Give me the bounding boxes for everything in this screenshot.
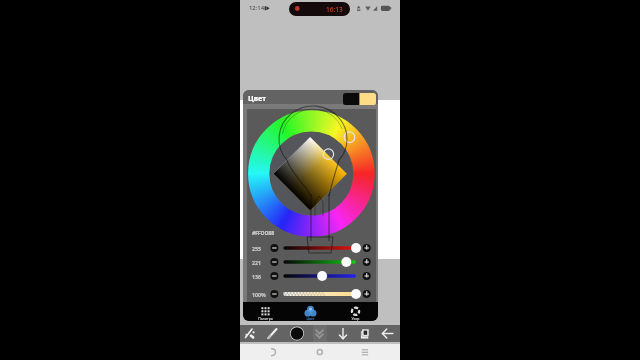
button[interactable]: Recents bbox=[361, 344, 377, 360]
staticText: 12:14 bbox=[249, 4, 265, 12]
button[interactable]: Undo bbox=[377, 325, 399, 342]
button[interactable]: Brush bbox=[262, 325, 284, 342]
staticText: Цвет bbox=[248, 93, 266, 103]
staticText: Узор bbox=[351, 316, 360, 321]
button[interactable]: Recording timer bbox=[289, 2, 350, 16]
staticText: 221 bbox=[252, 259, 261, 266]
button[interactable]: Colour bbox=[286, 325, 308, 342]
staticText: Цвет bbox=[306, 316, 315, 321]
staticText: 136 bbox=[252, 273, 261, 280]
button[interactable]: Current and new colour bbox=[343, 93, 376, 105]
button[interactable]: Цвет bbox=[288, 302, 333, 321]
button[interactable]: Узор bbox=[333, 302, 378, 321]
button[interactable]: Import bbox=[332, 325, 354, 342]
staticText: #FFDD88 bbox=[252, 229, 275, 236]
staticText: 100% bbox=[252, 291, 266, 298]
button[interactable]: Layers bbox=[355, 325, 377, 342]
button[interactable]: Back bbox=[273, 344, 289, 360]
staticText: 255 bbox=[252, 245, 261, 252]
button[interactable]: Home bbox=[316, 344, 332, 360]
staticText: 16:13 bbox=[326, 5, 343, 14]
button[interactable]: Палитра bbox=[243, 302, 288, 321]
button[interactable]: Smudge bbox=[239, 325, 261, 342]
staticText: Палитра bbox=[258, 316, 273, 321]
button[interactable]: More tools bbox=[309, 325, 331, 342]
